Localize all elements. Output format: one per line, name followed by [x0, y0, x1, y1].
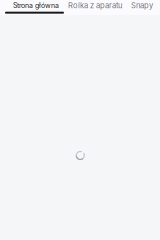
staticText: Strona główna — [13, 1, 59, 10]
button[interactable]: Strona główna — [13, 0, 59, 15]
staticText: Snapy — [131, 1, 153, 10]
button[interactable]: Rolka z aparatu — [68, 0, 122, 15]
button[interactable]: Snapy — [131, 0, 153, 15]
staticText: Rolka z aparatu — [68, 1, 122, 10]
